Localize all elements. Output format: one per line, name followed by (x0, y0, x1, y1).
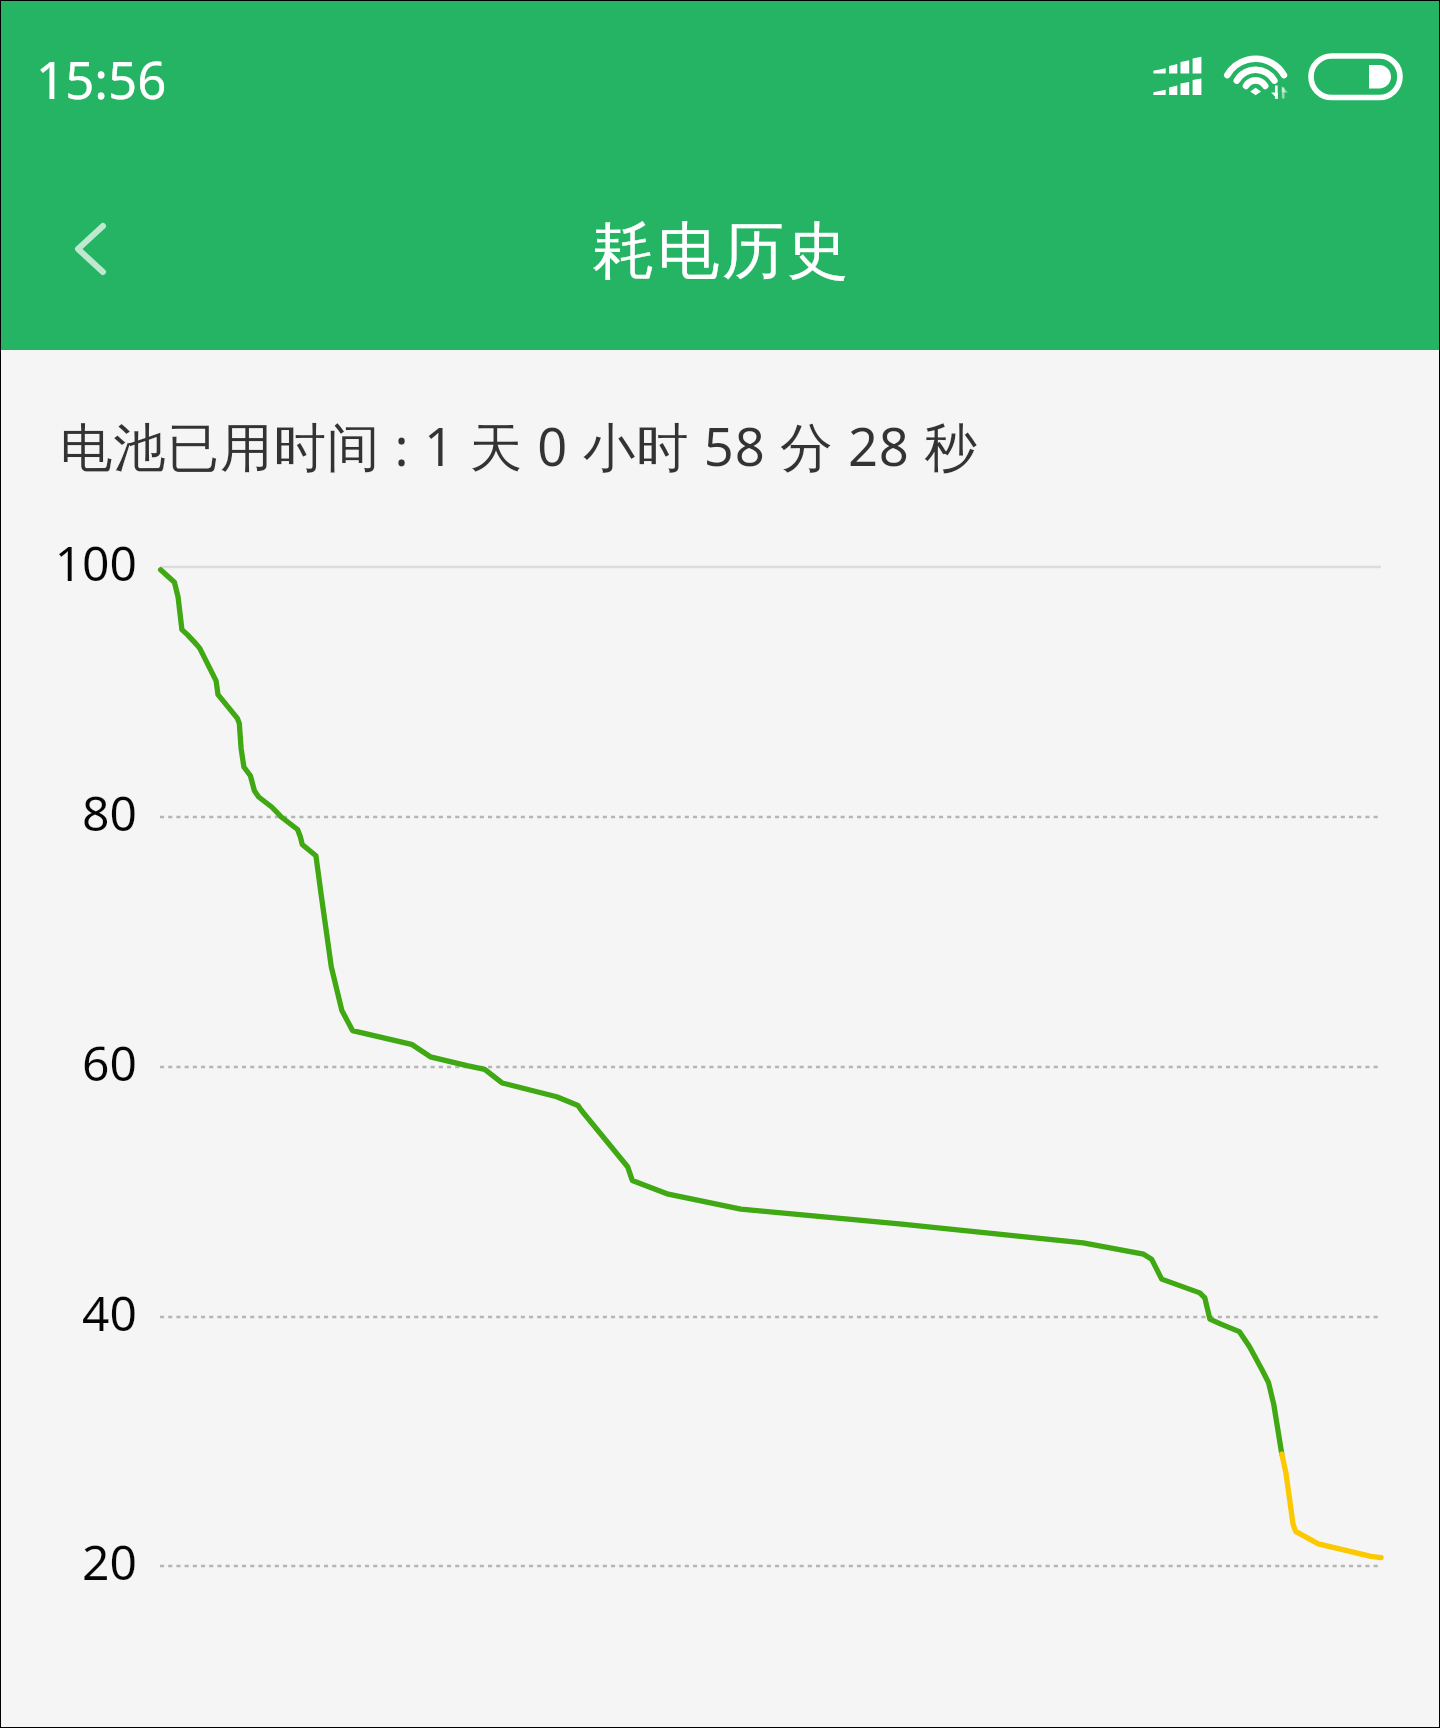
staticText: 20 (3, 1529, 137, 1594)
staticText: 耗电历史 (2, 212, 1440, 290)
staticText: 40 (3, 1280, 137, 1345)
staticText: 100 (3, 530, 137, 595)
staticText: 电池已用时间 : 1 天 0 小时 58 分 28 秒 (60, 410, 978, 482)
staticText: 80 (3, 780, 137, 845)
button[interactable]: Back (36, 191, 144, 299)
staticText: 60 (3, 1030, 137, 1095)
staticText: 15:56 (36, 44, 167, 113)
